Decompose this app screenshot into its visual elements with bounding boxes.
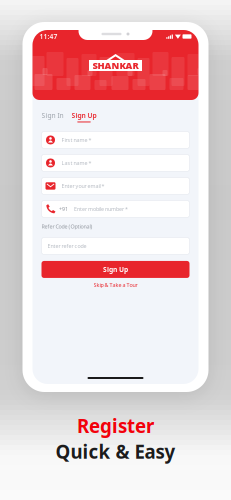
staticText: Skip & Take a Tour [93, 281, 137, 288]
staticText: Sign Up [71, 111, 96, 120]
button[interactable]: Enter refer code [41, 237, 189, 254]
staticText: Sign In [41, 111, 63, 120]
staticText: Refer Code (Optional) [41, 223, 92, 230]
button[interactable]: Skip & Take a Tour [41, 281, 189, 289]
button[interactable]: Enter your email * [41, 177, 189, 194]
button[interactable]: First name * [41, 131, 189, 148]
button[interactable]: +91 [41, 200, 189, 217]
staticText: Enter refer code [47, 242, 86, 249]
staticText: Enter mobile number * [74, 205, 128, 212]
staticText: Last name * [61, 159, 91, 166]
staticText: Sign Up [103, 265, 128, 274]
staticText: Register [77, 413, 154, 438]
button[interactable]: Sign Up [71, 111, 96, 122]
staticText: Quick & Easy [55, 439, 175, 464]
staticText: 11:47 [39, 32, 57, 41]
staticText: First name * [61, 136, 91, 143]
staticText: SHANKAR [92, 59, 138, 72]
staticText: +91 [59, 205, 68, 212]
button[interactable]: Last name * [41, 154, 189, 171]
staticText: Enter your email * [61, 182, 104, 189]
button[interactable]: Sign In [41, 111, 63, 122]
button[interactable]: Sign Up [41, 261, 189, 278]
